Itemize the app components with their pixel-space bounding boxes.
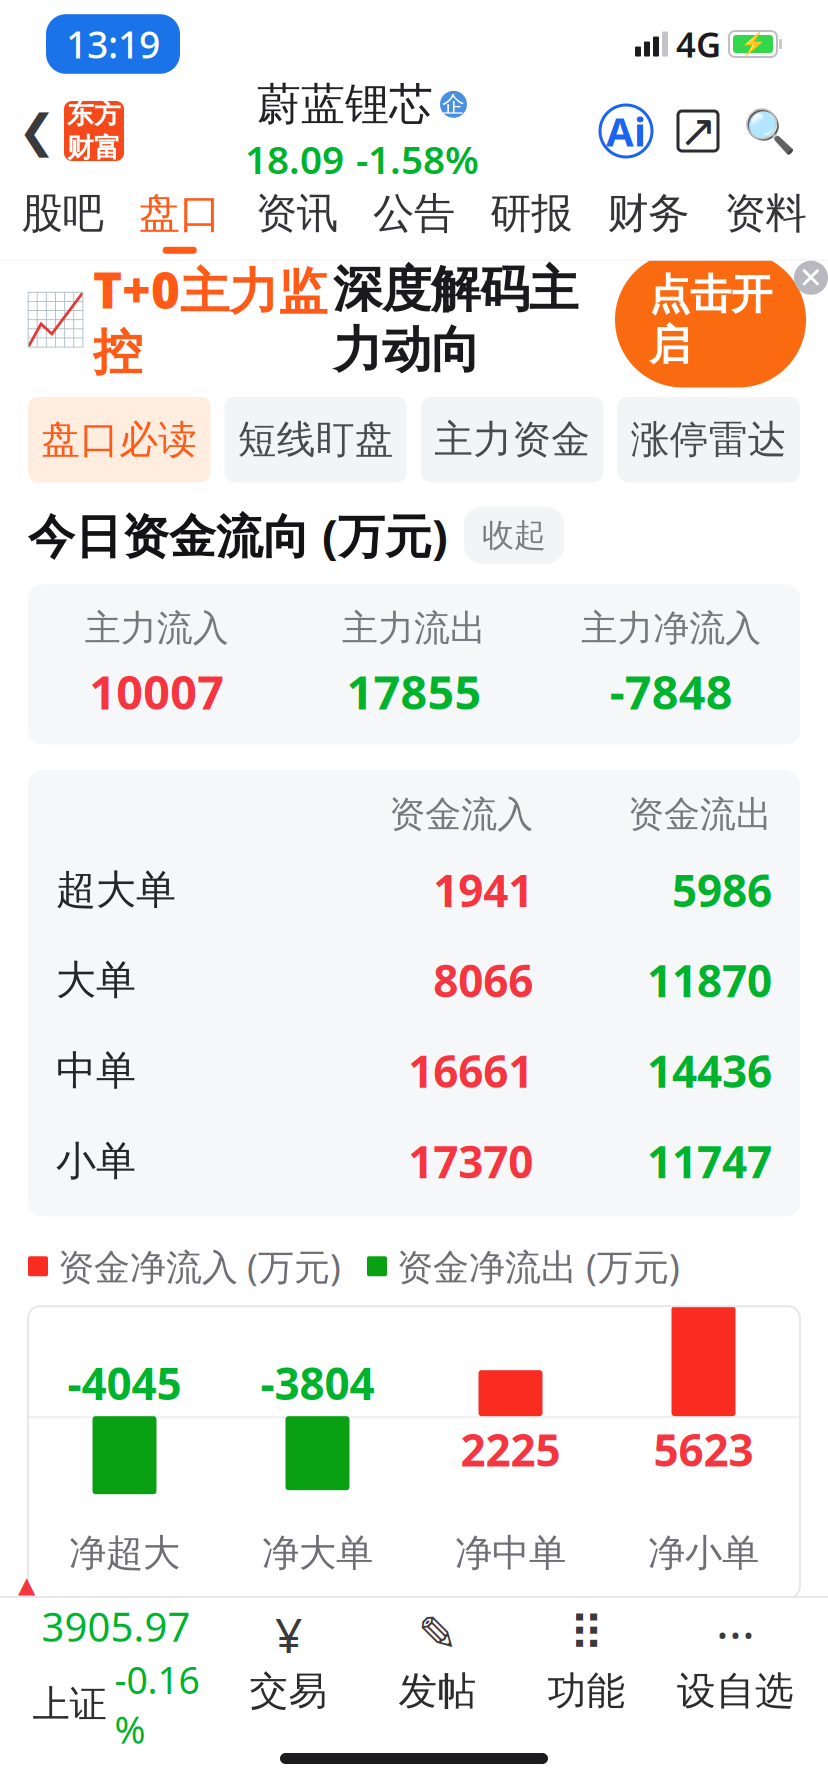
staticText: 主力资金 xyxy=(434,416,590,463)
button[interactable]: 📈 xyxy=(0,264,828,376)
staticText: 东方 xyxy=(67,98,121,130)
button[interactable]: 主力资金 xyxy=(421,397,603,482)
staticText: 17855 xyxy=(346,660,481,722)
staticText: 净小单 xyxy=(648,1530,759,1576)
staticText: 资金净流入 (万元) xyxy=(58,1242,341,1290)
button[interactable]: East Money home xyxy=(64,101,124,161)
staticText: 净大单 xyxy=(262,1530,373,1576)
staticText: 资讯 xyxy=(256,188,338,239)
staticText: ❮ xyxy=(18,105,56,157)
staticText: 14436 xyxy=(647,1041,772,1100)
staticText: 蔚蓝锂芯 xyxy=(257,77,433,131)
staticText: 研报 xyxy=(490,188,572,239)
staticText: ¥ xyxy=(275,1602,302,1666)
staticText: 上证 xyxy=(32,1681,106,1727)
staticText: 主力流出 xyxy=(342,606,486,650)
staticText: 主力流入 xyxy=(85,606,229,650)
button[interactable]: AI assistant xyxy=(600,105,652,157)
button[interactable]: 研报 xyxy=(473,174,590,260)
staticText: 财富 xyxy=(67,131,121,164)
staticText: 企 xyxy=(442,90,465,118)
staticText: -4045 xyxy=(67,1354,181,1412)
staticText: 今日资金流向 (万元) xyxy=(28,504,448,566)
staticText: ✎ xyxy=(417,1607,457,1661)
button[interactable]: Back xyxy=(10,96,64,166)
staticText: 盘口必读 xyxy=(41,416,197,463)
button[interactable]: Functions xyxy=(512,1611,661,1715)
button[interactable]: Post xyxy=(363,1611,512,1715)
button[interactable]: 资料 xyxy=(707,174,824,260)
button[interactable]: 股吧 xyxy=(4,174,121,260)
button[interactable]: Add to watchlist xyxy=(661,1611,810,1715)
staticText: -3804 xyxy=(260,1354,374,1412)
staticText: 置顶 xyxy=(714,1683,784,1726)
staticText: 2225 xyxy=(460,1420,560,1479)
button[interactable]: Share xyxy=(674,107,722,155)
staticText: 小单 xyxy=(56,1137,136,1186)
staticText: 股吧 xyxy=(22,188,104,239)
staticText: 所属板块 xyxy=(28,1676,216,1733)
staticText: T+0主力监控 xyxy=(93,257,327,383)
staticText: ⠿ xyxy=(569,1607,604,1661)
staticText: 主力净流入 xyxy=(581,606,761,650)
staticText: Ai xyxy=(606,104,646,157)
staticText: 11747 xyxy=(647,1132,772,1190)
button[interactable]: 涨停雷达 xyxy=(617,397,800,482)
staticText: ▲ xyxy=(18,1572,35,1598)
staticText: 3905.97 xyxy=(41,1600,190,1653)
button[interactable]: Search xyxy=(744,106,794,156)
staticText: -0.16% xyxy=(114,1655,199,1754)
staticText: 资金净流出 (万元) xyxy=(397,1242,680,1290)
staticText: 收起 xyxy=(482,516,546,555)
staticText: 深度解码主力动向 xyxy=(333,259,578,380)
staticText: 交易 xyxy=(249,1667,327,1715)
staticText: ··· xyxy=(716,1602,755,1666)
staticText: 设自选 xyxy=(677,1667,794,1715)
staticText: 11870 xyxy=(647,951,772,1009)
staticText: ✕ xyxy=(798,261,823,294)
staticText: 🔍 xyxy=(742,107,795,155)
button[interactable]: 盘口 xyxy=(121,174,238,260)
staticText: 超大单 xyxy=(56,865,176,914)
staticText: 大单 xyxy=(56,956,136,1005)
staticText: 财务 xyxy=(607,188,689,239)
staticText: 短线盯盘 xyxy=(238,416,394,463)
staticText: 收起 xyxy=(250,1685,314,1724)
button[interactable]: 收起 xyxy=(232,1676,332,1733)
staticText: 功能 xyxy=(547,1667,625,1715)
staticText: 5986 xyxy=(672,861,772,919)
staticText: 点击开启 xyxy=(649,269,772,370)
staticText: 13:19 xyxy=(66,19,160,69)
button[interactable]: 资讯 xyxy=(238,174,355,260)
staticText: ↗ xyxy=(679,105,717,157)
staticText: 净超大 xyxy=(69,1530,180,1576)
staticText: 4G xyxy=(676,21,721,67)
button[interactable]: 收起 xyxy=(464,507,564,564)
button[interactable]: 短线盯盘 xyxy=(224,397,407,482)
staticText: 1941 xyxy=(433,861,533,919)
staticText: 16661 xyxy=(408,1041,533,1100)
staticText: ⚡ xyxy=(739,32,766,56)
staticText: 5623 xyxy=(653,1420,753,1479)
staticText: 8066 xyxy=(433,951,533,1009)
staticText: 公告 xyxy=(373,188,455,239)
staticText: -7848 xyxy=(610,660,733,722)
staticText: 17370 xyxy=(408,1132,533,1190)
staticText: 净中单 xyxy=(455,1530,566,1576)
staticText: 资料 xyxy=(724,188,806,239)
staticText: 资金流出 xyxy=(628,792,772,837)
staticText: 发帖 xyxy=(398,1667,476,1715)
button[interactable]: 盘口必读 xyxy=(28,397,210,482)
staticText: 涨停雷达 xyxy=(631,416,787,463)
staticText: 📈 xyxy=(24,291,87,349)
button[interactable]: 公告 xyxy=(355,174,472,260)
button[interactable]: 财务 xyxy=(590,174,707,260)
button[interactable]: ▲ xyxy=(18,1572,214,1754)
button[interactable]: 置顶 xyxy=(698,1674,800,1735)
button[interactable]: Trade xyxy=(214,1611,363,1715)
staticText: 盘口 xyxy=(139,188,221,239)
staticText: 资金流入 xyxy=(389,792,533,837)
button[interactable]: Close ad xyxy=(794,261,828,295)
